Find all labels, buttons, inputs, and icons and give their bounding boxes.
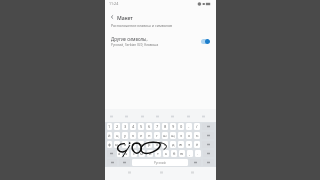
button[interactable]: Recents	[122, 167, 136, 177]
button[interactable]: ё	[194, 141, 200, 148]
button[interactable]: д	[170, 141, 176, 148]
button[interactable]: Language	[119, 159, 130, 166]
button[interactable]: м	[139, 150, 145, 157]
button[interactable]: ж	[178, 141, 184, 148]
button[interactable]: 9	[170, 123, 176, 130]
button[interactable]: Settings	[169, 113, 175, 119]
staticText: .	[197, 151, 199, 156]
staticText: в	[124, 142, 127, 147]
button[interactable]: 2	[114, 123, 120, 130]
button[interactable]: Theme	[185, 113, 191, 119]
staticText: 7	[156, 124, 159, 129]
button[interactable]: Enter	[202, 132, 214, 139]
staticText: 9	[172, 124, 175, 129]
button[interactable]: ц	[114, 132, 120, 139]
staticText: г	[156, 133, 158, 138]
staticText: х	[188, 133, 191, 138]
button[interactable]: ь	[163, 150, 169, 157]
button[interactable]: 6	[146, 123, 152, 130]
button[interactable]: Symbols	[202, 141, 214, 148]
button[interactable]: Другие символы,	[105, 34, 216, 48]
button[interactable]: х	[186, 132, 192, 139]
button[interactable]: /	[194, 123, 200, 130]
button[interactable]: Settings	[107, 159, 117, 166]
button[interactable]: .	[195, 150, 201, 157]
staticText: 5	[140, 124, 143, 129]
staticText: Другие символы,	[111, 36, 148, 42]
staticText: д	[172, 142, 175, 147]
button[interactable]: GIF	[123, 113, 129, 119]
button[interactable]: -	[186, 123, 192, 130]
staticText: я	[118, 151, 121, 156]
button[interactable]: ю	[179, 150, 185, 157]
staticText: ц	[116, 133, 119, 138]
button[interactable]: Emoji	[190, 159, 201, 166]
staticText: /	[196, 124, 198, 129]
button[interactable]: л	[162, 141, 168, 148]
button[interactable]: г	[154, 132, 160, 139]
button[interactable]: ш	[162, 132, 168, 139]
staticText: 0	[180, 124, 183, 129]
button[interactable]: а	[130, 141, 136, 148]
button[interactable]: с	[131, 150, 137, 157]
button[interactable]: Shift	[107, 150, 115, 157]
staticText: ж	[179, 142, 183, 147]
button[interactable]: я	[117, 150, 122, 157]
button[interactable]: Keyboard	[203, 159, 214, 166]
button[interactable]: More	[200, 113, 206, 119]
button[interactable]: б	[171, 150, 177, 157]
button[interactable]: е	[138, 132, 144, 139]
staticText: Русский	[154, 161, 166, 165]
button[interactable]: н	[146, 132, 152, 139]
button[interactable]: 7	[154, 123, 160, 130]
button[interactable]: з	[178, 132, 184, 139]
button[interactable]: р	[146, 141, 152, 148]
button[interactable]: щ	[170, 132, 176, 139]
button[interactable]: ч	[124, 150, 129, 157]
button[interactable]: Backspace	[202, 123, 214, 130]
button[interactable]: Symbols	[203, 150, 214, 157]
button[interactable]: ы	[114, 141, 120, 148]
staticText: п	[140, 142, 143, 147]
staticText: 3	[124, 124, 127, 129]
staticText: л	[164, 142, 167, 147]
button[interactable]: э	[186, 141, 192, 148]
staticText: р	[148, 142, 151, 147]
button[interactable]: у	[122, 132, 128, 139]
button[interactable]: к	[130, 132, 136, 139]
staticText: ъ	[196, 133, 199, 138]
staticText: ы	[115, 142, 119, 147]
button[interactable]: Sticker	[108, 113, 114, 119]
staticText: с	[133, 151, 135, 156]
button[interactable]: Translate	[154, 113, 160, 119]
staticText: 4	[132, 124, 135, 129]
button[interactable]: Back	[185, 167, 199, 177]
button[interactable]: 5	[138, 123, 144, 130]
button[interactable]: 0	[178, 123, 184, 130]
button[interactable]: Русский	[132, 159, 188, 166]
staticText: ф	[108, 142, 111, 147]
button[interactable]: Back	[108, 13, 116, 21]
button[interactable]: о	[154, 141, 160, 148]
staticText: 2	[116, 124, 119, 129]
button[interactable]: 3	[122, 123, 128, 130]
staticText: 8	[164, 124, 167, 129]
button[interactable]: т	[155, 150, 161, 157]
staticText: т	[157, 151, 159, 156]
button[interactable]: й	[107, 132, 112, 139]
button[interactable]: Clipboard	[139, 113, 145, 119]
button[interactable]: и	[147, 150, 153, 157]
staticText: Русский, Serbian (UI), Клавиша	[111, 43, 159, 47]
button[interactable]: ъ	[194, 132, 200, 139]
button[interactable]: 1	[107, 123, 112, 130]
staticText: Макет	[117, 14, 133, 21]
button[interactable]: 8	[162, 123, 168, 130]
button[interactable]: 4	[130, 123, 136, 130]
button[interactable]: ф	[107, 141, 112, 148]
staticText: к	[132, 133, 135, 138]
button[interactable]: ,	[187, 150, 193, 157]
staticText: ё	[196, 142, 199, 147]
button[interactable]: в	[122, 141, 128, 148]
button[interactable]: п	[138, 141, 144, 148]
button[interactable]: Home	[154, 167, 168, 177]
